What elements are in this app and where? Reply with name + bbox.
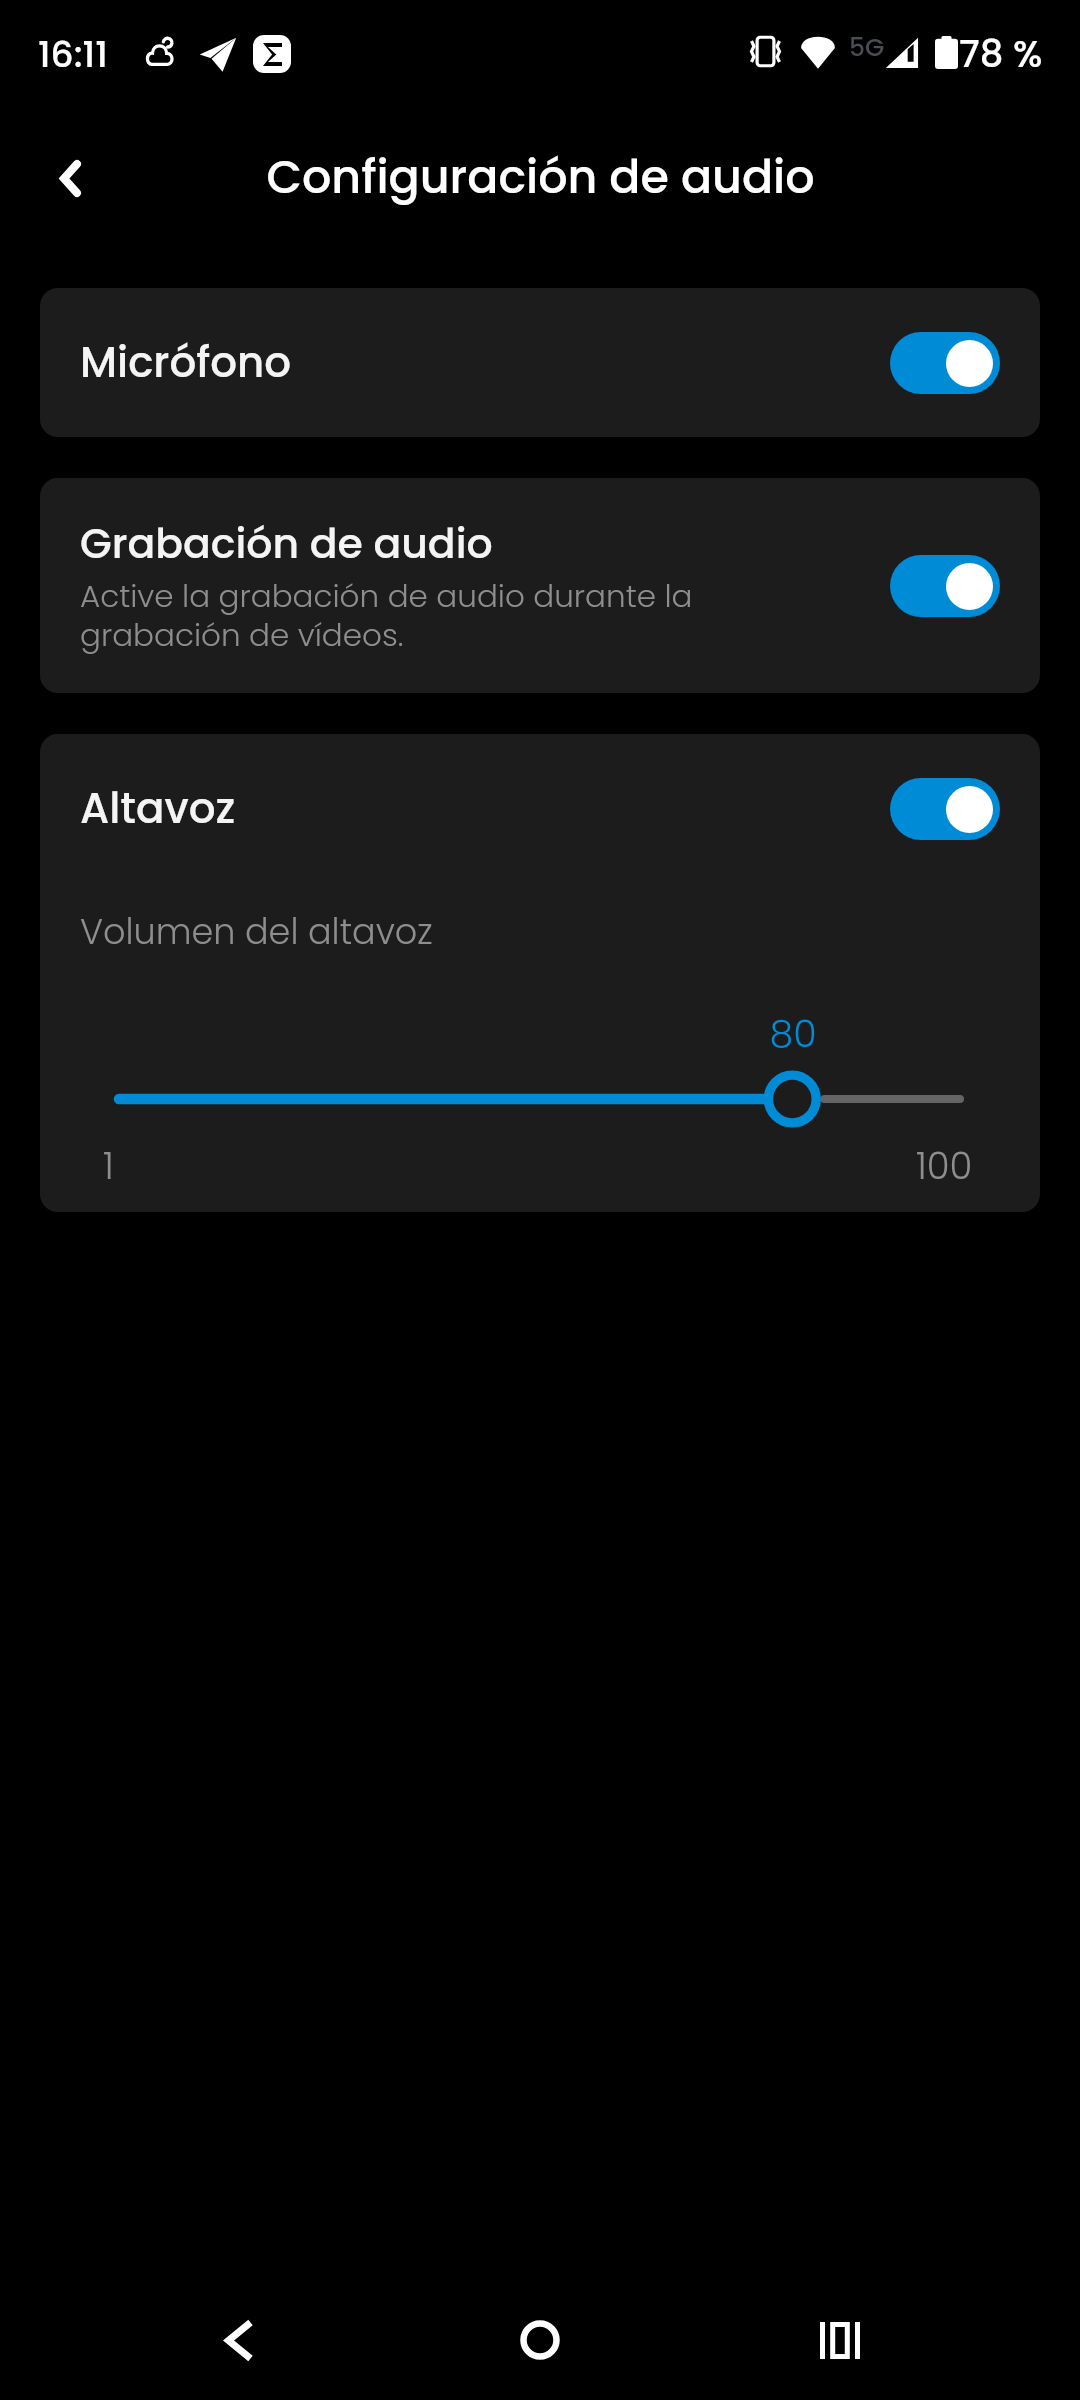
staticText: Volumen del altavoz	[80, 907, 433, 956]
staticText: Altavoz	[80, 779, 236, 838]
staticText: 100	[916, 1140, 973, 1192]
button[interactable]: Back	[179, 2280, 299, 2400]
staticText: Configuración de audio	[266, 145, 815, 209]
staticText: 80	[753, 1007, 833, 1060]
staticText: 1	[103, 1140, 114, 1192]
button[interactable]: Grabación de audio activada	[890, 555, 1000, 617]
staticText: Active la grabación de audio durante la …	[80, 574, 720, 657]
button[interactable]: Back	[26, 134, 114, 222]
button[interactable]: Altavoz activado	[890, 778, 1000, 840]
button[interactable]: Grabación de audio	[40, 478, 1040, 693]
button[interactable]: Altavoz	[40, 734, 1040, 883]
button[interactable]: Recent apps	[780, 2280, 900, 2400]
staticText: Micrófono	[80, 333, 292, 392]
button[interactable]: Volumen del altavoz: 80	[79, 1064, 1001, 1134]
button[interactable]: Micrófono activado	[890, 332, 1000, 394]
staticText: 16:11	[38, 29, 108, 79]
button[interactable]: Micrófono	[40, 288, 1040, 437]
staticText: 78 %	[959, 28, 1043, 80]
staticText: 5G	[849, 30, 885, 65]
staticText: Grabación de audio	[80, 515, 493, 572]
button[interactable]: Home	[480, 2280, 600, 2400]
